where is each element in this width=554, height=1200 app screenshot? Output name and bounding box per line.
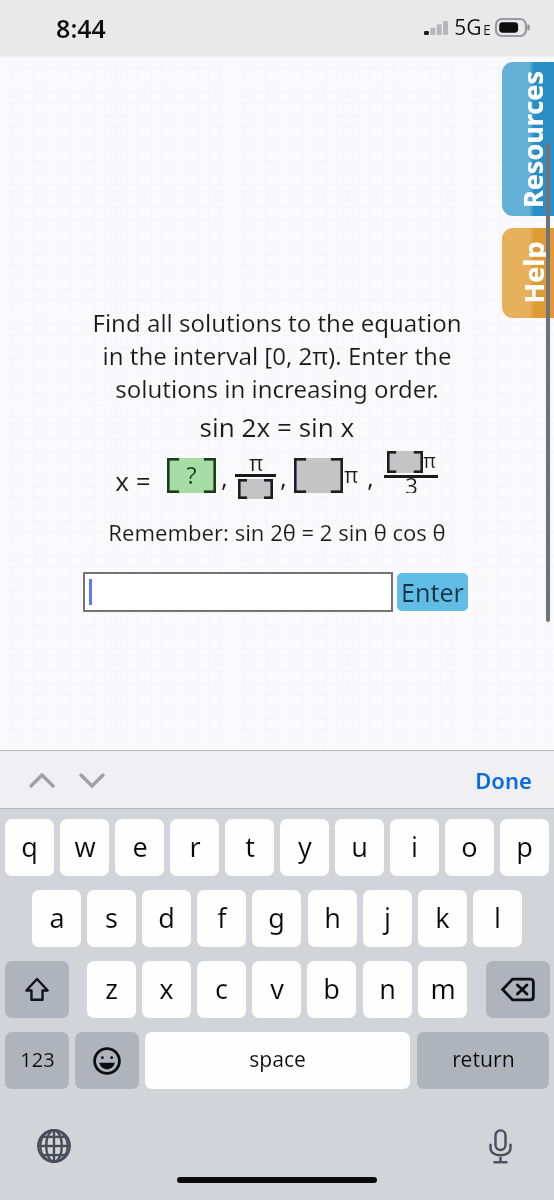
staticText: sin 2x = sin x [0, 409, 554, 444]
button[interactable]: x [142, 961, 191, 1018]
staticText: s [105, 899, 118, 936]
staticText: Remember: sin 2θ = 2 sin θ cos θ [0, 517, 554, 547]
staticText: Find all solutions to the equation [0, 306, 554, 339]
button[interactable]: s [87, 890, 136, 947]
staticText: ? [186, 458, 197, 491]
button[interactable]: d [142, 890, 191, 947]
button[interactable]: Enter [397, 573, 468, 611]
staticText: 8:44 [56, 11, 106, 45]
button[interactable]: l [473, 890, 522, 947]
staticText: Help [514, 241, 551, 303]
staticText: z [105, 970, 118, 1007]
button[interactable]: u [335, 819, 384, 876]
button[interactable]: Change keyboard [32, 1124, 76, 1168]
button[interactable]: Help [502, 228, 554, 318]
button[interactable]: r [170, 819, 219, 876]
staticText: y [298, 828, 312, 865]
button[interactable]: Dictation [478, 1124, 522, 1168]
staticText: a [49, 899, 65, 936]
staticText: q [21, 828, 38, 865]
staticText: , [367, 459, 374, 494]
staticText: m [430, 970, 456, 1007]
staticText: π [423, 448, 436, 474]
staticText: f [217, 899, 227, 936]
staticText: d [158, 899, 175, 936]
button[interactable]: y [280, 819, 329, 876]
staticText: x [159, 970, 174, 1007]
staticText: h [324, 899, 341, 936]
staticText: x = [115, 463, 151, 498]
staticText: Resources [514, 71, 551, 208]
button[interactable]: Emoji [75, 1032, 139, 1089]
staticText: return [452, 1045, 515, 1074]
staticText: e [132, 828, 148, 865]
staticText: π [344, 461, 358, 490]
staticText: u [351, 828, 368, 865]
button[interactable]: m [418, 961, 467, 1018]
button[interactable]: n [363, 961, 412, 1018]
staticText: g [268, 899, 285, 936]
button[interactable]: Resources [502, 62, 554, 216]
button[interactable]: i [390, 819, 439, 876]
button[interactable]: Previous field [22, 760, 62, 800]
button[interactable]: Shift [5, 961, 69, 1018]
button[interactable]: q [5, 819, 54, 876]
staticText: space [249, 1045, 306, 1074]
button[interactable]: 123 [5, 1032, 69, 1089]
staticText: 123 [20, 1046, 55, 1073]
staticText: p [516, 828, 533, 865]
staticText: r [189, 828, 201, 865]
button[interactable]: t [225, 819, 274, 876]
staticText: , [280, 459, 287, 494]
staticText: solutions in increasing order. [0, 372, 554, 405]
button[interactable]: e [115, 819, 164, 876]
button[interactable]: h [308, 890, 357, 947]
button[interactable]: p [500, 819, 549, 876]
staticText: Done [475, 765, 532, 795]
button[interactable]: v [252, 961, 301, 1018]
button[interactable]: z [87, 961, 136, 1018]
button[interactable]: o [445, 819, 494, 876]
button[interactable]: Backspace [486, 961, 550, 1018]
button[interactable]: b [307, 961, 356, 1018]
button[interactable]: j [363, 890, 412, 947]
button[interactable]: Next field [72, 760, 112, 800]
button[interactable]: c [197, 961, 246, 1018]
staticText: v [270, 970, 284, 1007]
button[interactable]: f [197, 890, 246, 947]
staticText: Enter [401, 575, 464, 609]
button[interactable]: a [32, 890, 81, 947]
button[interactable]: Done [469, 759, 538, 801]
button[interactable]: return [417, 1032, 549, 1089]
staticText: 3 [405, 470, 418, 493]
staticText: c [215, 970, 228, 1007]
staticText: t [245, 828, 255, 865]
staticText: w [74, 828, 96, 865]
staticText: E [483, 20, 491, 39]
staticText: 5G [454, 13, 482, 42]
staticText: π [249, 449, 263, 478]
staticText: b [323, 970, 340, 1007]
staticText: o [461, 828, 478, 865]
staticText: , [221, 459, 228, 494]
staticText: in the interval [0, 2π). Enter the [0, 339, 554, 372]
button[interactable] [83, 572, 393, 612]
button[interactable]: w [60, 819, 109, 876]
button[interactable]: g [252, 890, 301, 947]
staticText: k [435, 899, 450, 936]
button[interactable]: space [145, 1032, 410, 1089]
staticText: n [379, 970, 396, 1007]
staticText: l [494, 899, 501, 936]
button[interactable]: k [418, 890, 467, 947]
staticText: i [411, 828, 418, 865]
staticText: j [384, 899, 391, 936]
